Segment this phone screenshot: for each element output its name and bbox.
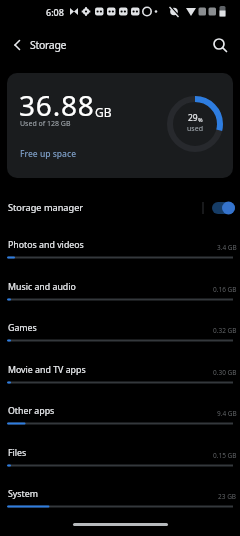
staticText: 0.15 GB [213,451,237,460]
button[interactable] [208,33,232,57]
staticText: Storage manager [8,201,84,214]
staticText: Movie and TV apps [8,364,86,376]
button[interactable]: System [0,483,240,521]
staticText: Used of 128 GB [20,119,71,129]
staticText: Games [8,322,37,334]
staticText: % [198,116,203,123]
staticText: Storage [30,38,67,52]
button[interactable]: Photos and videos [0,234,240,272]
button[interactable]: Music and audio [0,276,240,314]
button[interactable]: Other apps [0,400,240,438]
staticText: Files [8,447,27,459]
staticText: Free up space [20,148,77,160]
button[interactable]: Files [0,442,240,480]
staticText: GB [95,104,112,120]
staticText: 23 GB [218,492,237,501]
staticText: 0.30 GB [213,368,237,377]
button[interactable]: Games [0,317,240,355]
staticText: 9.4 GB [217,409,237,418]
button[interactable]: Movie and TV apps [0,359,240,397]
staticText: 3.4 GB [217,243,237,252]
staticText: 36.88 [19,86,95,124]
button[interactable] [6,33,30,57]
staticText: 0.16 GB [213,285,237,294]
staticText: used [187,124,203,134]
staticText: 29 [188,112,198,124]
button[interactable]: Storage manager [0,194,240,222]
staticText: 6:08 [46,6,64,18]
button[interactable]: Free up space [13,141,84,167]
staticText: Photos and videos [8,239,84,251]
staticText: 0.32 GB [213,326,237,335]
staticText: Other apps [8,405,55,417]
staticText: Music and audio [8,281,76,293]
staticText: System [8,488,38,500]
